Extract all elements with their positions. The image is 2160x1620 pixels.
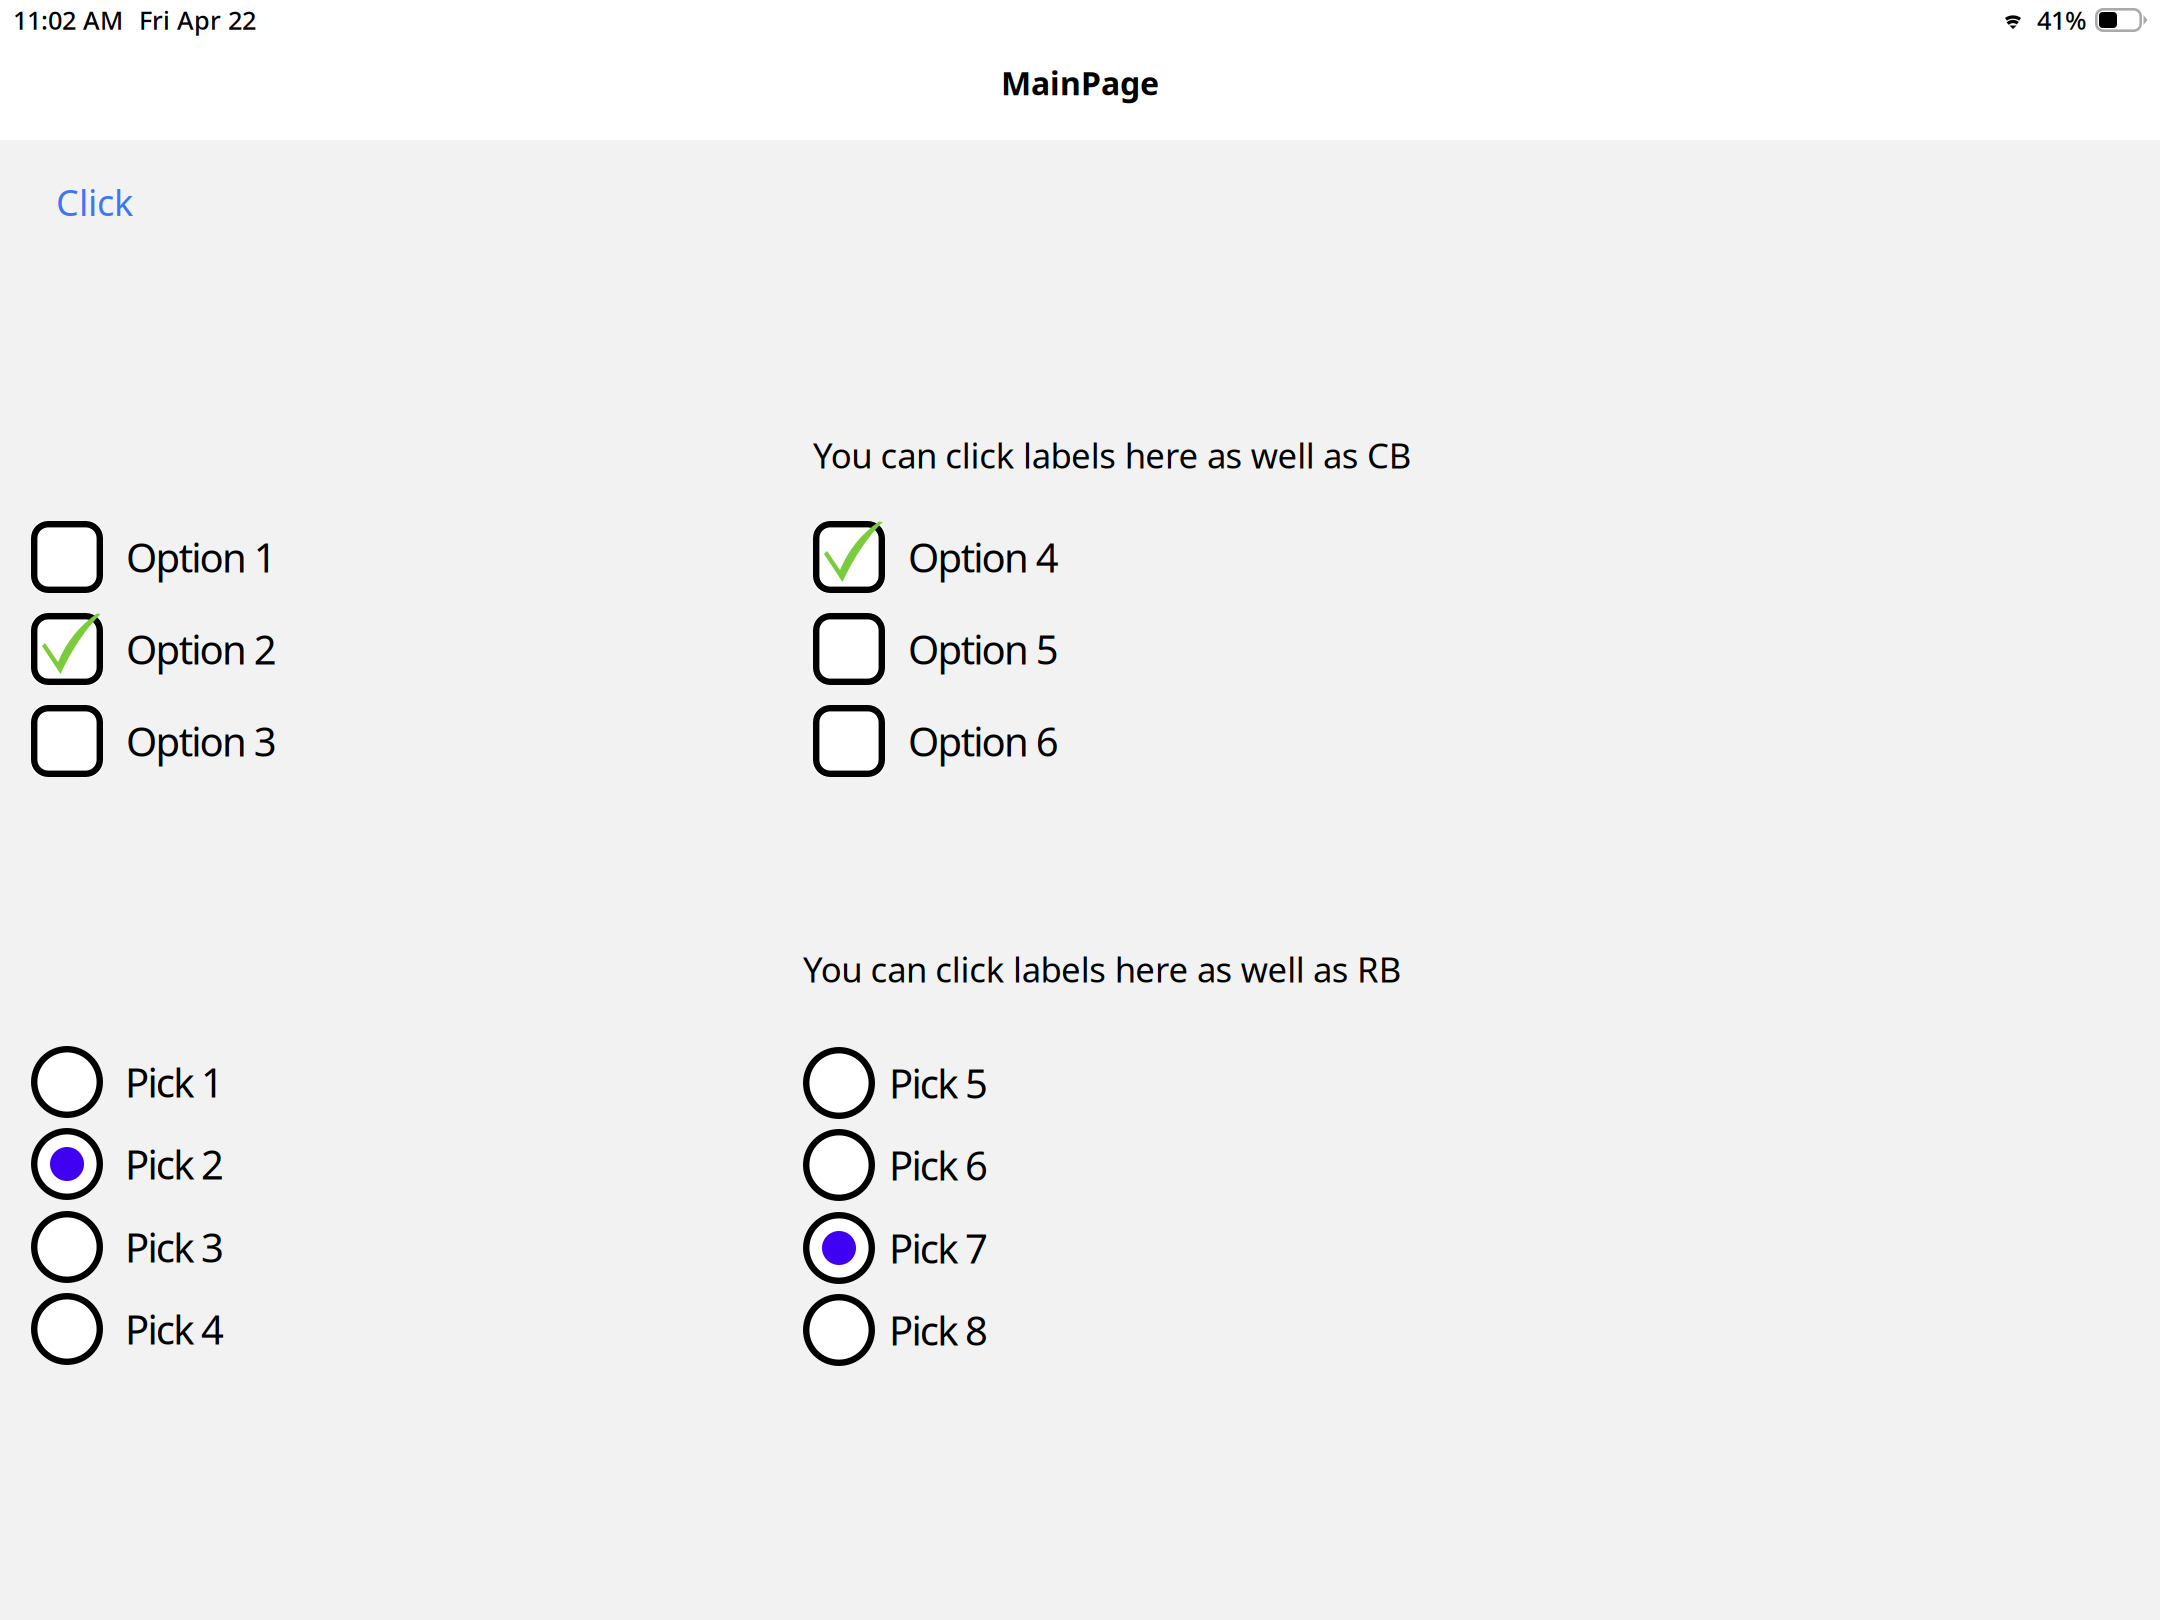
button[interactable]: Option 1 xyxy=(31,521,431,593)
staticText: Pick 5 xyxy=(889,1056,988,1109)
button[interactable]: Option 3 xyxy=(31,705,431,777)
staticText: Pick 2 xyxy=(125,1137,224,1190)
button[interactable]: Pick 3 xyxy=(31,1211,431,1283)
staticText: Pick 1 xyxy=(125,1055,224,1108)
staticText: Click xyxy=(56,178,133,226)
staticText: Fri Apr 22 xyxy=(139,3,256,37)
button[interactable]: Option 5 xyxy=(813,613,1213,685)
staticText: Option 6 xyxy=(908,714,1059,767)
staticText: 11:02 AM xyxy=(13,3,123,37)
staticText: You can click labels here as well as RB xyxy=(803,946,1402,992)
button[interactable]: Click xyxy=(56,175,166,229)
staticText: Option 3 xyxy=(126,714,277,767)
staticText: MainPage xyxy=(1001,61,1159,104)
button[interactable]: Pick 8 xyxy=(803,1294,1203,1366)
staticText: Pick 3 xyxy=(125,1220,224,1273)
button[interactable]: Pick 5 xyxy=(803,1047,1203,1119)
button[interactable]: Pick 7 xyxy=(803,1212,1203,1284)
staticText: Pick 7 xyxy=(889,1221,988,1274)
staticText: Option 5 xyxy=(908,622,1059,675)
staticText: You can click labels here as well as CB xyxy=(813,432,1412,478)
button[interactable]: Pick 2 xyxy=(31,1128,431,1200)
button[interactable]: Option 4 xyxy=(813,521,1213,593)
staticText: Option 4 xyxy=(908,530,1059,583)
staticText: Pick 8 xyxy=(889,1303,988,1356)
button[interactable]: Option 2 xyxy=(31,613,431,685)
button[interactable]: Pick 6 xyxy=(803,1129,1203,1201)
staticText: Pick 4 xyxy=(125,1302,224,1355)
staticText: Option 2 xyxy=(126,622,277,675)
button[interactable]: Option 6 xyxy=(813,705,1213,777)
staticText: Pick 6 xyxy=(889,1138,988,1191)
staticText: 41% xyxy=(2037,3,2087,37)
button[interactable]: Pick 1 xyxy=(31,1046,431,1118)
staticText: Option 1 xyxy=(126,530,277,583)
button[interactable]: Pick 4 xyxy=(31,1293,431,1365)
